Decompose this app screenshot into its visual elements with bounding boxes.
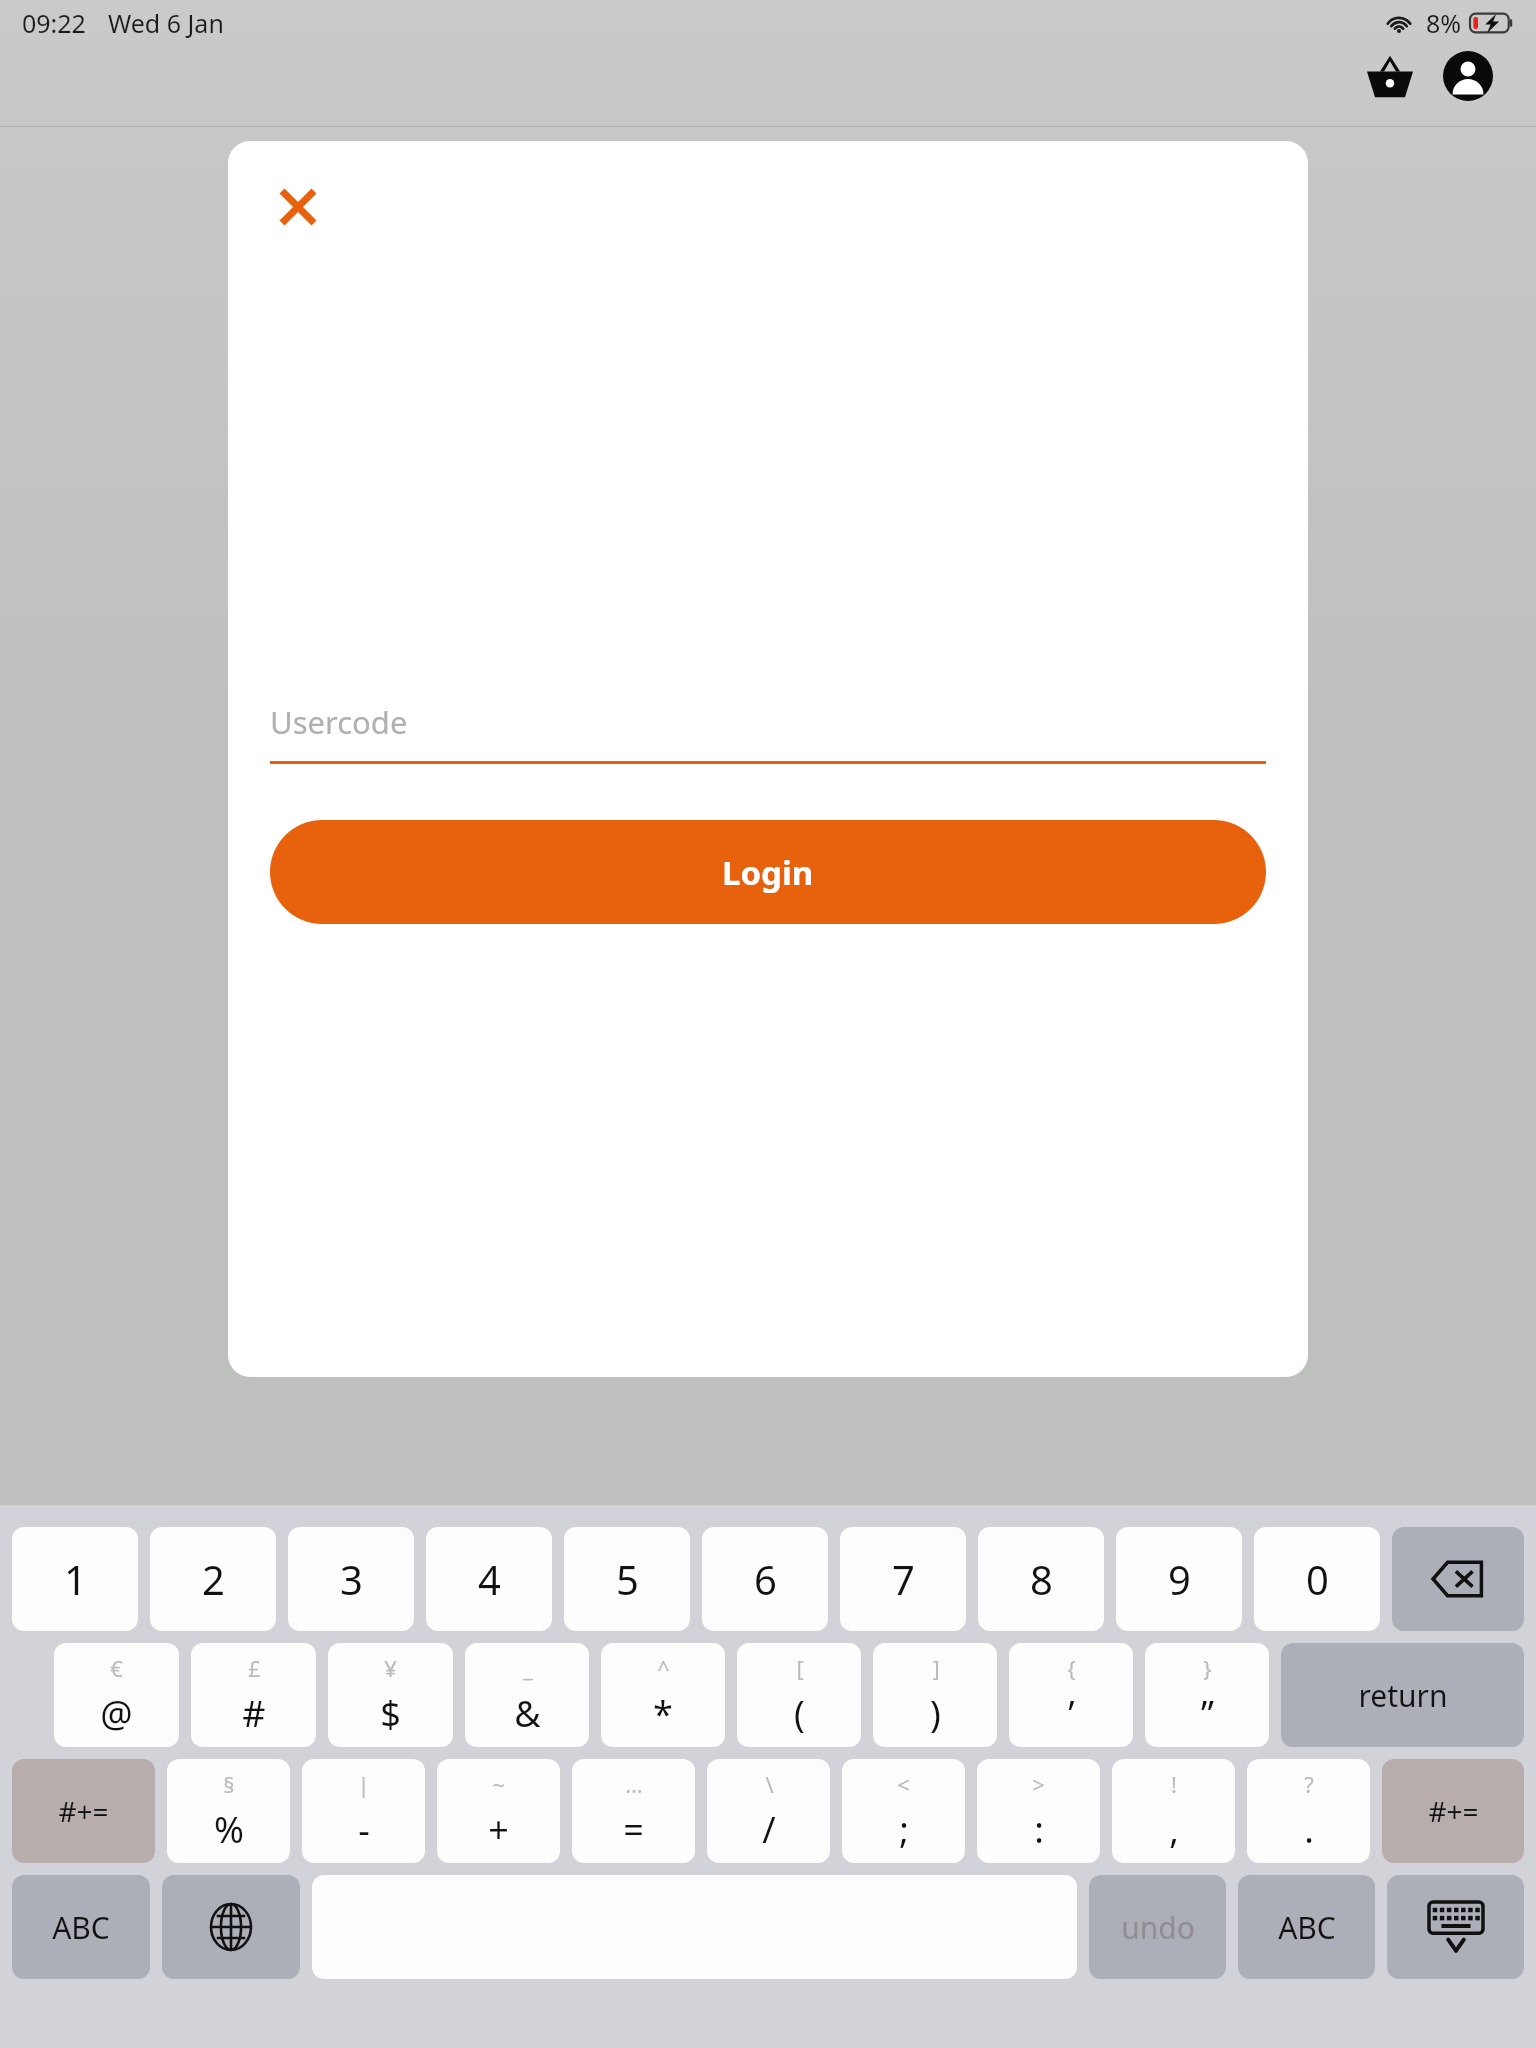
staticText: $ <box>380 1689 401 1738</box>
staticText: > <box>1032 1769 1045 1799</box>
button[interactable]: Account <box>1436 44 1500 108</box>
staticText: ” <box>1201 1689 1214 1738</box>
button[interactable]: € <box>54 1643 179 1747</box>
staticText: 09:22 <box>22 6 86 40</box>
staticText: Login <box>722 850 814 895</box>
staticText: } <box>1203 1653 1212 1683</box>
staticText: … <box>625 1769 643 1799</box>
button[interactable]: ABC <box>1238 1875 1375 1979</box>
button[interactable]: Hide keyboard <box>1387 1875 1524 1979</box>
staticText: undo <box>1121 1907 1195 1948</box>
staticText: 5 <box>616 1552 639 1606</box>
staticText: ; <box>899 1805 909 1854</box>
staticText: ( <box>794 1689 805 1738</box>
button[interactable]: Login <box>270 820 1266 924</box>
button[interactable]: § <box>167 1759 290 1863</box>
button[interactable]: Close <box>268 177 328 237</box>
staticText: { <box>1067 1653 1076 1683</box>
staticText: - <box>358 1805 370 1854</box>
button[interactable]: 9 <box>1116 1527 1242 1631</box>
button[interactable]: ~ <box>437 1759 560 1863</box>
staticText: 2 <box>202 1552 225 1606</box>
button[interactable]: Change keyboard <box>162 1875 300 1979</box>
button[interactable]: 5 <box>564 1527 690 1631</box>
staticText: ~ <box>492 1769 505 1799</box>
staticText: 6 <box>754 1552 777 1606</box>
button[interactable]: 3 <box>288 1527 414 1631</box>
staticText: / <box>762 1805 776 1854</box>
button[interactable]: [ <box>737 1643 861 1747</box>
staticText: ! <box>1171 1769 1177 1799</box>
staticText: 8 <box>1030 1552 1053 1606</box>
button[interactable]: 2 <box>150 1527 276 1631</box>
staticText: ’ <box>1068 1689 1075 1738</box>
staticText: \ <box>765 1769 774 1799</box>
staticText: = <box>623 1805 644 1854</box>
staticText: return <box>1358 1675 1448 1716</box>
button[interactable]: > <box>977 1759 1100 1863</box>
staticText: < <box>897 1769 910 1799</box>
button[interactable]: 6 <box>702 1527 828 1631</box>
button[interactable]: ? <box>1247 1759 1370 1863</box>
button[interactable]: ¥ <box>328 1643 453 1747</box>
button[interactable]: ! <box>1112 1759 1235 1863</box>
staticText: * <box>653 1689 673 1738</box>
staticText: 0 <box>1306 1552 1329 1606</box>
button[interactable]: ABC <box>12 1875 150 1979</box>
staticText: + <box>488 1805 509 1854</box>
button[interactable]: undo <box>1089 1875 1226 1979</box>
staticText: @ <box>100 1689 133 1738</box>
button[interactable]: £ <box>191 1643 316 1747</box>
button[interactable]: 7 <box>840 1527 966 1631</box>
button[interactable]: Basket <box>1358 44 1422 108</box>
staticText: Usercode <box>270 701 408 743</box>
staticText: : <box>1034 1805 1044 1854</box>
staticText: ^ <box>657 1653 670 1683</box>
staticText: 7 <box>892 1552 915 1606</box>
button[interactable]: { <box>1009 1643 1133 1747</box>
button[interactable]: 1 <box>12 1527 138 1631</box>
staticText: § <box>223 1769 235 1799</box>
staticText: € <box>110 1653 123 1683</box>
button[interactable]: < <box>842 1759 965 1863</box>
staticText: & <box>514 1689 541 1738</box>
staticText: ) <box>930 1689 941 1738</box>
button[interactable]: #+= <box>1382 1759 1524 1863</box>
staticText: 1 <box>64 1552 87 1606</box>
staticText: Wed 6 Jan <box>108 6 224 40</box>
staticText: # <box>242 1689 266 1738</box>
staticText: ¥ <box>384 1653 397 1683</box>
button[interactable]: Usercode <box>270 701 1266 764</box>
button[interactable]: return <box>1281 1643 1524 1747</box>
button[interactable]: | <box>302 1759 425 1863</box>
staticText: 9 <box>1168 1552 1191 1606</box>
staticText: 4 <box>478 1552 501 1606</box>
button[interactable]: 0 <box>1254 1527 1380 1631</box>
staticText: 3 <box>340 1552 363 1606</box>
button[interactable]: … <box>572 1759 695 1863</box>
staticText: , <box>1169 1805 1179 1854</box>
button[interactable]: 8 <box>978 1527 1104 1631</box>
staticText: _ <box>523 1653 533 1683</box>
staticText: £ <box>248 1653 261 1683</box>
staticText: #+= <box>1428 1792 1479 1830</box>
button[interactable]: \ <box>707 1759 830 1863</box>
staticText: 8% <box>1426 6 1462 40</box>
button[interactable]: 4 <box>426 1527 552 1631</box>
staticText: ? <box>1304 1769 1314 1799</box>
button[interactable]: #+= <box>12 1759 155 1863</box>
button[interactable]: ^ <box>601 1643 725 1747</box>
staticText: #+= <box>58 1792 109 1830</box>
staticText: ] <box>932 1653 940 1683</box>
staticText: | <box>357 1769 370 1799</box>
button[interactable]: _ <box>465 1643 589 1747</box>
staticText: ABC <box>1278 1907 1336 1948</box>
button[interactable]: } <box>1145 1643 1269 1747</box>
staticText: [ <box>796 1653 804 1683</box>
button[interactable]: ] <box>873 1643 997 1747</box>
staticText: . <box>1304 1805 1314 1854</box>
staticText: ABC <box>52 1907 110 1948</box>
staticText: % <box>214 1805 244 1854</box>
button[interactable]: Backspace <box>1392 1527 1524 1631</box>
